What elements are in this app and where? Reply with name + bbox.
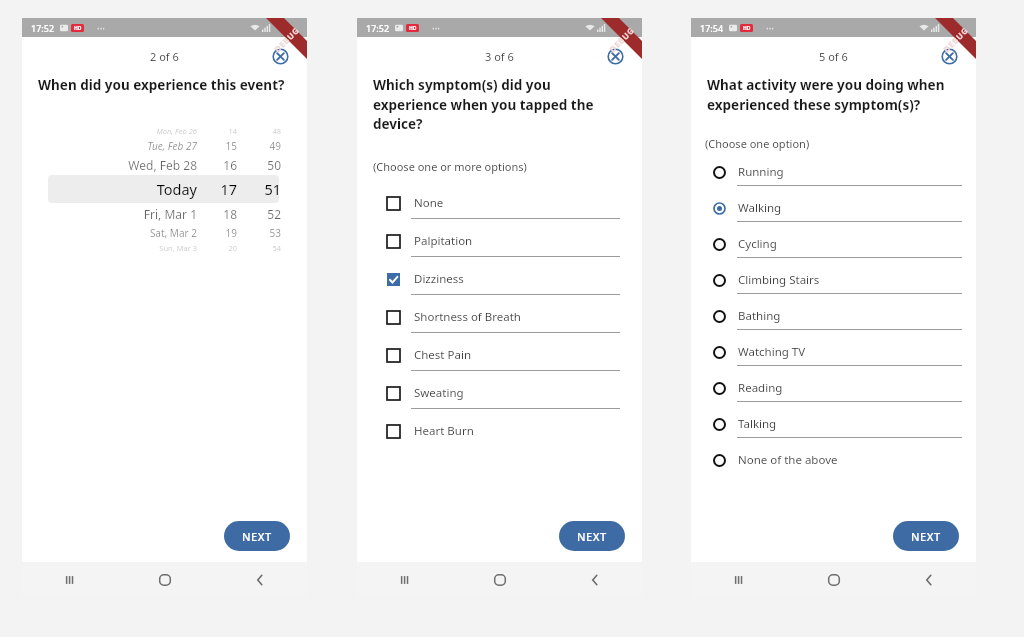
staticText: Cycling <box>738 236 777 252</box>
button[interactable]: None of the above <box>713 447 962 473</box>
button[interactable]: Close <box>938 45 960 67</box>
button[interactable]: Back <box>212 562 307 598</box>
staticText: ··· <box>766 21 775 35</box>
button[interactable]: Sweating <box>387 378 620 416</box>
button[interactable]: Mon, Feb 26 <box>48 124 281 137</box>
staticText: (Choose one option) <box>705 136 976 151</box>
button[interactable]: Palpitation <box>387 226 620 264</box>
button[interactable]: Close <box>269 45 291 67</box>
staticText: 17:54 <box>700 22 724 34</box>
button[interactable]: Climbing Stairs <box>713 267 962 303</box>
staticText: Which symptom(s) did you experience when… <box>373 76 620 133</box>
button[interactable]: Back <box>547 562 642 598</box>
button[interactable]: Walking <box>713 195 962 231</box>
button[interactable]: Dizziness <box>387 264 620 302</box>
staticText: Wed, Feb 28 <box>48 157 197 173</box>
staticText: None of the above <box>738 452 838 468</box>
staticText: 17:52 <box>366 22 390 34</box>
staticText: 54 <box>237 243 281 253</box>
staticText: Shortness of Breath <box>414 309 521 325</box>
staticText: Sat, Mar 2 <box>48 226 197 240</box>
staticText: None <box>414 195 444 211</box>
button[interactable]: NEXT <box>224 521 290 551</box>
staticText: 15 <box>197 139 237 153</box>
button[interactable]: Back <box>881 562 976 598</box>
button[interactable]: Bathing <box>713 303 962 339</box>
staticText: Heart Burn <box>414 423 474 439</box>
staticText: 17 <box>197 179 237 199</box>
staticText: 3 of 6 <box>485 49 514 64</box>
staticText: HD <box>743 25 751 32</box>
staticText: Tue, Feb 27 <box>48 139 197 153</box>
button[interactable]: Shortness of Breath <box>387 302 620 340</box>
button[interactable]: Running <box>713 159 962 195</box>
staticText: Fri, Mar 1 <box>48 206 197 222</box>
staticText: HD <box>74 25 82 32</box>
staticText: NEXT <box>242 529 272 544</box>
button[interactable]: Close <box>604 45 626 67</box>
button[interactable]: Recents <box>691 562 786 598</box>
staticText: 53 <box>237 226 281 240</box>
button[interactable]: Fri, Mar 1 <box>48 203 281 224</box>
staticText: 17:52 <box>31 22 55 34</box>
button[interactable]: Talking <box>713 411 962 447</box>
staticText: Bathing <box>738 308 781 324</box>
button[interactable]: Tue, Feb 27 <box>48 137 281 154</box>
staticText: Talking <box>738 416 777 432</box>
button[interactable]: Today <box>48 175 281 203</box>
staticText: Walking <box>738 200 782 216</box>
staticText: NEXT <box>577 529 607 544</box>
button[interactable]: NEXT <box>559 521 625 551</box>
staticText: 14 <box>197 126 237 136</box>
staticText: ··· <box>432 21 441 35</box>
staticText: 20 <box>197 243 237 253</box>
button[interactable]: None <box>387 188 620 226</box>
staticText: Reading <box>738 380 783 396</box>
button[interactable]: Wed, Feb 28 <box>48 154 281 175</box>
button[interactable]: Sun, Mar 3 <box>48 241 281 254</box>
staticText: 52 <box>237 206 281 222</box>
staticText: 18 <box>197 206 237 222</box>
staticText: NEXT <box>911 529 941 544</box>
button[interactable]: Recents <box>357 562 452 598</box>
staticText: What activity were you doing when experi… <box>707 76 954 114</box>
staticText: Sweating <box>414 385 464 401</box>
staticText: 19 <box>197 226 237 240</box>
button[interactable]: Reading <box>713 375 962 411</box>
button[interactable]: Recents <box>22 562 117 598</box>
button[interactable]: Home <box>117 562 212 598</box>
staticText: 2 of 6 <box>150 49 179 64</box>
button[interactable]: Watching TV <box>713 339 962 375</box>
button[interactable]: Cycling <box>713 231 962 267</box>
button[interactable]: Home <box>786 562 881 598</box>
staticText: DEBUG <box>941 25 970 54</box>
button[interactable]: Chest Pain <box>387 340 620 378</box>
staticText: When did you experience this event? <box>38 76 285 94</box>
staticText: 51 <box>237 179 281 199</box>
staticText: (Choose one or more options) <box>373 159 642 174</box>
staticText: Climbing Stairs <box>738 272 820 288</box>
staticText: 16 <box>197 157 237 173</box>
staticText: 48 <box>237 126 281 136</box>
staticText: Today <box>48 179 197 199</box>
staticText: DEBUG <box>272 25 301 54</box>
staticText: HD <box>409 25 417 32</box>
button[interactable]: Sat, Mar 2 <box>48 224 281 241</box>
staticText: Dizziness <box>414 271 464 287</box>
staticText: Palpitation <box>414 233 473 249</box>
staticText: Mon, Feb 26 <box>48 126 197 136</box>
staticText: Running <box>738 164 784 180</box>
staticText: ··· <box>97 21 106 35</box>
staticText: 50 <box>237 157 281 173</box>
staticText: 49 <box>237 139 281 153</box>
staticText: Chest Pain <box>414 347 471 363</box>
staticText: DEBUG <box>607 25 636 54</box>
staticText: Watching TV <box>738 344 806 360</box>
staticText: Sun, Mar 3 <box>48 243 197 253</box>
button[interactable]: NEXT <box>893 521 959 551</box>
staticText: 5 of 6 <box>819 49 848 64</box>
button[interactable]: Heart Burn <box>387 416 620 446</box>
button[interactable]: Home <box>452 562 547 598</box>
